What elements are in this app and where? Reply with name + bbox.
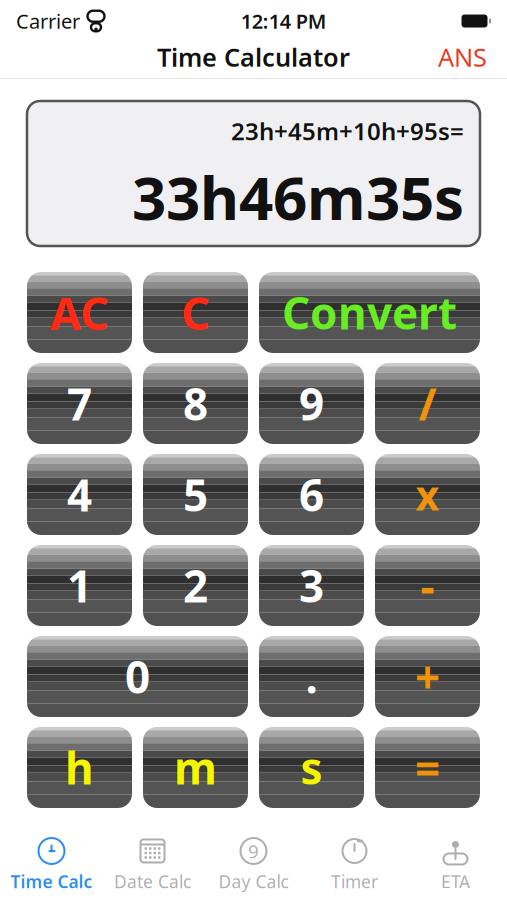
staticText: h xyxy=(65,738,94,797)
button[interactable]: x xyxy=(375,454,480,535)
button[interactable]: 9 xyxy=(259,363,364,444)
staticText: 3 xyxy=(299,556,324,615)
staticText: Date Calc xyxy=(114,870,191,893)
button[interactable]: Convert xyxy=(259,272,480,353)
button[interactable]: 9 xyxy=(203,834,304,896)
staticText: 12:14 PM xyxy=(241,8,327,34)
button[interactable]: - xyxy=(375,545,480,626)
staticText: ANS xyxy=(438,40,487,74)
button[interactable]: 7 xyxy=(27,363,132,444)
staticText: 23h+45m+10h+95s= xyxy=(231,115,464,147)
staticText: x xyxy=(415,467,439,522)
staticText: 4 xyxy=(67,465,92,524)
button[interactable]: Timer xyxy=(304,834,405,896)
button[interactable]: 6 xyxy=(259,454,364,535)
staticText: 9 xyxy=(248,839,259,863)
button[interactable]: 3 xyxy=(259,545,364,626)
staticText: Convert xyxy=(282,283,457,342)
button[interactable]: 0 xyxy=(27,636,248,717)
button[interactable]: Time Calc xyxy=(1,834,102,896)
staticText: 6 xyxy=(299,465,324,524)
staticText: 2 xyxy=(183,556,208,615)
button[interactable]: + xyxy=(375,636,480,717)
staticText: 33h46m35s xyxy=(132,157,464,237)
staticText: Time Calculator xyxy=(157,40,350,74)
button[interactable]: 5 xyxy=(143,454,248,535)
button[interactable]: s xyxy=(259,727,364,808)
staticText: 0 xyxy=(125,647,150,706)
button[interactable]: C xyxy=(143,272,248,353)
staticText: 7 xyxy=(67,374,92,433)
button[interactable]: ETA xyxy=(405,834,506,896)
staticText: Timer xyxy=(331,870,378,893)
staticText: Carrier xyxy=(16,8,80,34)
staticText: = xyxy=(415,738,440,797)
staticText: / xyxy=(418,374,436,433)
button[interactable]: Date Calc xyxy=(102,834,203,896)
staticText: Time Calc xyxy=(10,870,92,893)
staticText: s xyxy=(300,738,322,797)
staticText: C xyxy=(181,282,210,343)
button[interactable]: 8 xyxy=(143,363,248,444)
button[interactable]: 1 xyxy=(27,545,132,626)
button[interactable]: = xyxy=(375,727,480,808)
staticText: 5 xyxy=(183,465,208,524)
button[interactable]: 2 xyxy=(143,545,248,626)
staticText: - xyxy=(420,556,434,615)
button[interactable]: m xyxy=(143,727,248,808)
staticText: . xyxy=(305,647,317,706)
button[interactable]: / xyxy=(375,363,480,444)
button[interactable]: 4 xyxy=(27,454,132,535)
staticText: AC xyxy=(50,282,109,343)
staticText: ETA xyxy=(441,870,470,893)
staticText: Day Calc xyxy=(218,870,288,893)
button[interactable]: ANS xyxy=(424,32,501,82)
button[interactable]: h xyxy=(27,727,132,808)
staticText: + xyxy=(415,647,440,706)
staticText: 9 xyxy=(299,374,324,433)
staticText: 8 xyxy=(183,374,208,433)
button[interactable]: . xyxy=(259,636,364,717)
button[interactable]: AC xyxy=(27,272,132,353)
staticText: m xyxy=(174,738,217,797)
staticText: 1 xyxy=(67,556,92,615)
